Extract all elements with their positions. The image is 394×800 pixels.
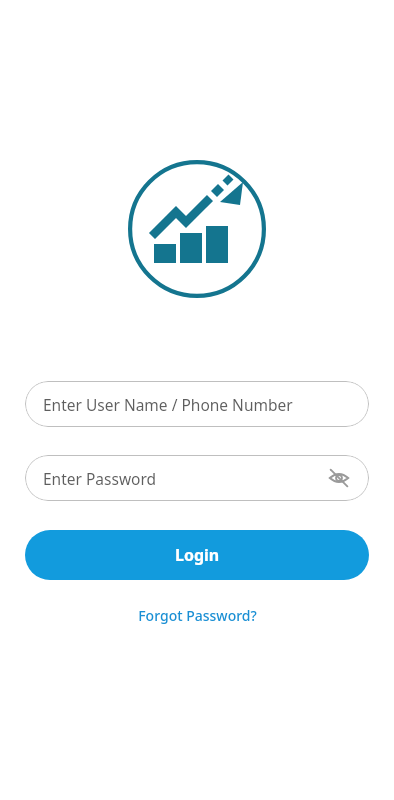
staticText: Enter User Name / Phone Number — [43, 394, 293, 415]
staticText: Forgot Password? — [138, 606, 257, 625]
button[interactable]: Show password — [325, 464, 353, 492]
button[interactable]: Enter Password — [25, 455, 369, 501]
staticText: Login — [175, 544, 220, 566]
button[interactable]: Forgot Password? — [126, 602, 269, 629]
staticText: Enter Password — [43, 468, 157, 489]
button[interactable]: Enter User Name / Phone Number — [25, 381, 369, 427]
button[interactable]: Login — [25, 530, 369, 580]
